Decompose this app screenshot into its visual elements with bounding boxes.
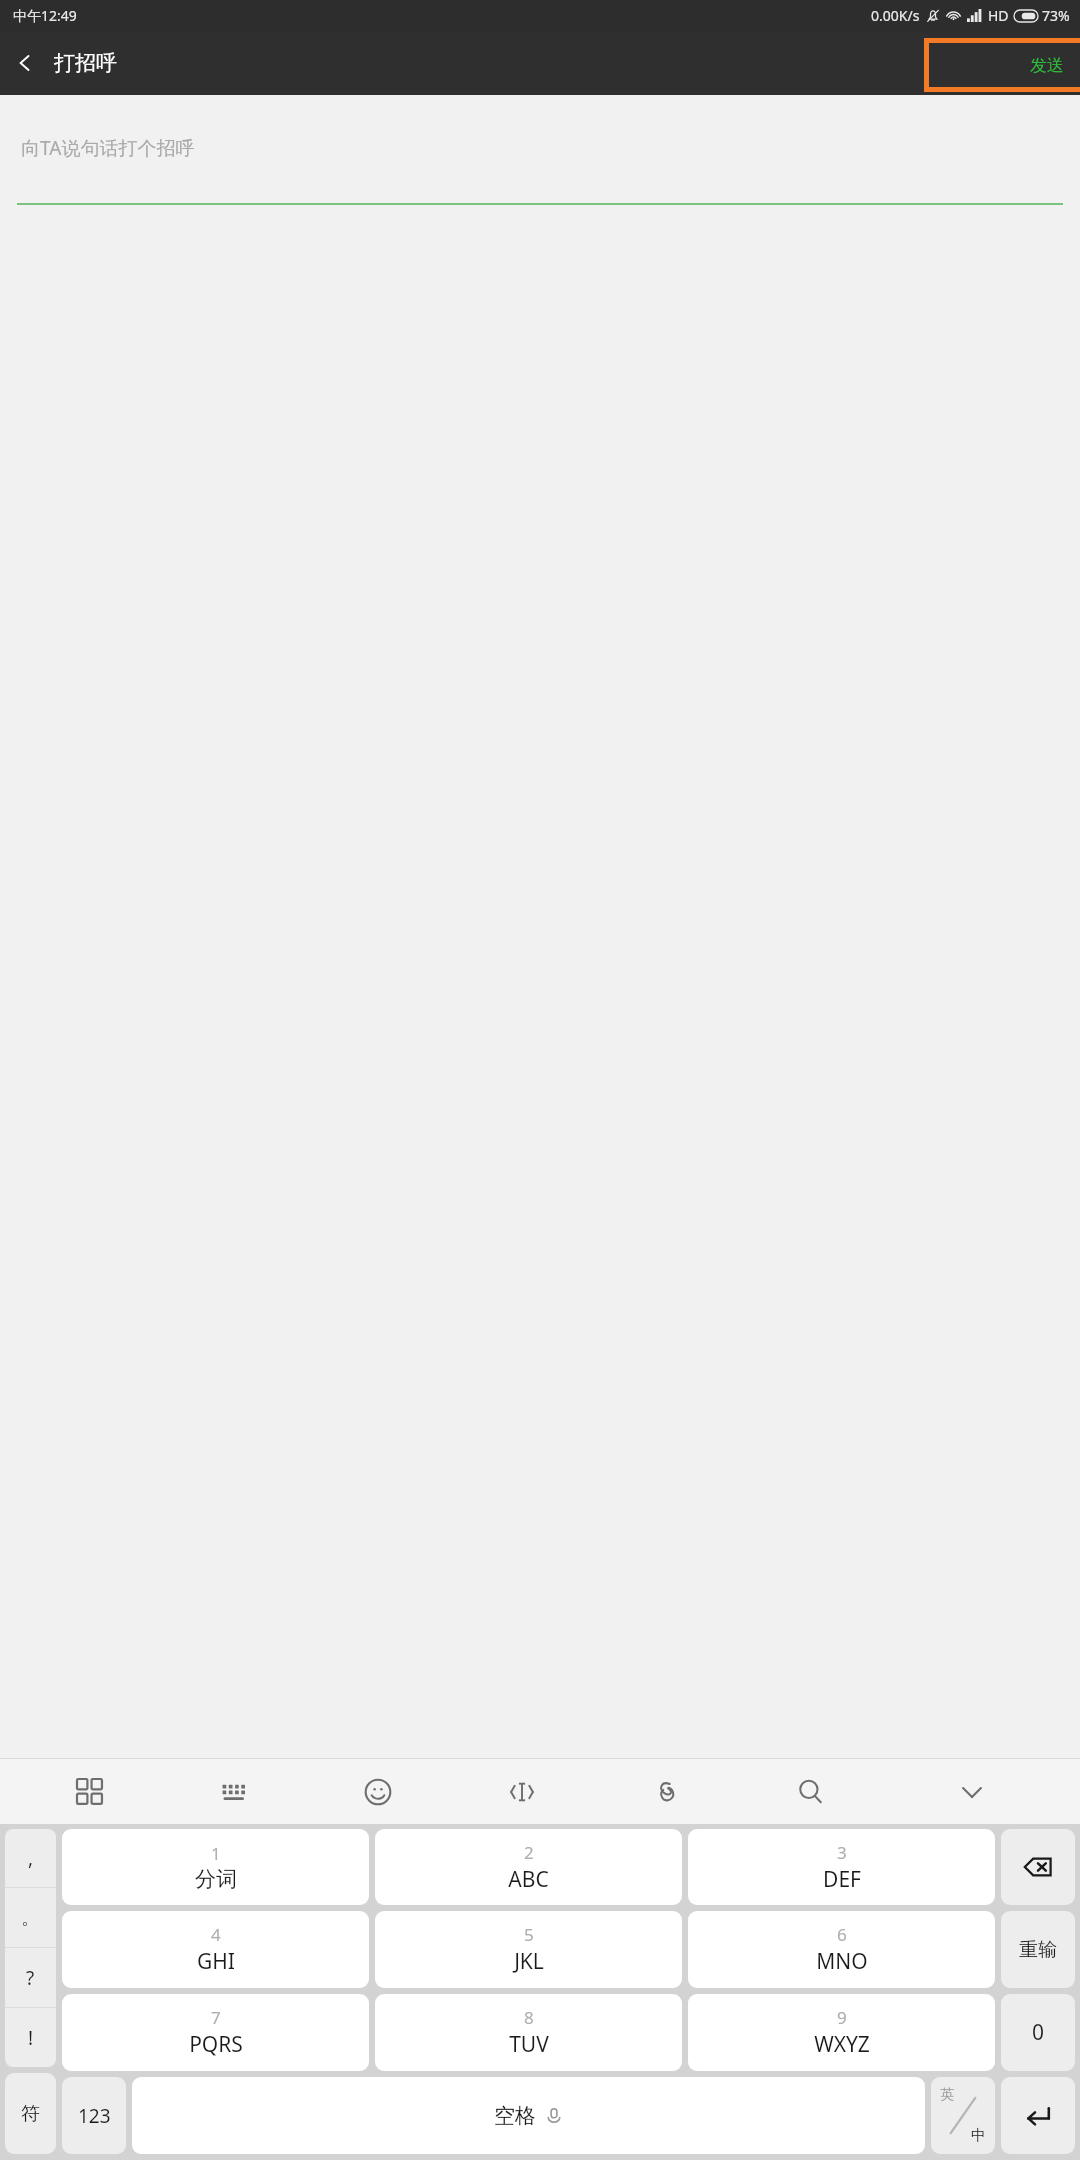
staticText: ? [26,1965,35,1991]
staticText: MNO [816,1947,868,1976]
staticText: 空格 [494,2103,536,2129]
staticText: 9 [837,2006,847,2029]
staticText: ! [28,2025,34,2051]
staticText: 123 [78,2103,111,2129]
button[interactable]: Keyboard layouts [18,1759,162,1824]
staticText: 重输 [1019,1938,1057,1962]
staticText: 0 [1032,2018,1045,2047]
staticText: 英 [940,2086,954,2104]
staticText: 7 [211,2006,221,2029]
button[interactable]: Hide keyboard [882,1759,1062,1824]
button[interactable]: 123 [62,2077,126,2154]
staticText: 向TA说句话打个招呼 [21,135,195,161]
staticText: ABC [508,1865,549,1894]
button[interactable]: Keyboard [162,1759,306,1824]
button[interactable]: 。 [5,1888,56,1947]
button[interactable]: , [5,1829,56,1887]
staticText: 2 [524,1841,534,1864]
staticText: PQRS [189,2030,243,2059]
staticText: HD [988,6,1009,25]
button[interactable]: 4 [62,1911,369,1988]
staticText: WXYZ [814,2030,870,2059]
staticText: 6 [837,1923,847,1946]
button[interactable]: 发送 [929,43,1080,87]
staticText: 0.00K/s [871,6,920,25]
staticText: 打招呼 [54,50,117,76]
button[interactable]: Search [738,1759,882,1824]
button[interactable]: 6 [688,1911,995,1988]
button[interactable]: 3 [688,1829,995,1905]
staticText: 中 [971,2126,986,2145]
button[interactable]: 空格 [132,2077,925,2154]
staticText: JKL [514,1947,544,1976]
staticText: 符 [21,2102,40,2126]
staticText: 发送 [1030,55,1064,76]
other: Back [14,52,36,74]
button[interactable]: 5 [375,1911,682,1988]
button[interactable]: Emoji [306,1759,450,1824]
staticText: TUV [509,2030,549,2059]
button[interactable]: 7 [62,1994,369,2071]
staticText: , [28,1845,34,1871]
button[interactable]: Edit text [450,1759,594,1824]
staticText: 中午12:49 [13,6,77,25]
staticText: 分词 [195,1866,237,1892]
button[interactable]: Enter [1001,2077,1075,2154]
button[interactable]: Backspace [1001,1829,1075,1905]
button[interactable]: ! [5,2008,56,2067]
button[interactable]: ? [5,1948,56,2007]
staticText: 3 [837,1841,847,1864]
button[interactable]: 9 [688,1994,995,2071]
staticText: 4 [211,1923,221,1946]
button[interactable]: 0 [1001,1994,1075,2071]
button[interactable]: 英 [931,2077,995,2154]
button[interactable]: 1 [62,1829,369,1905]
staticText: 1 [211,1842,221,1865]
button[interactable]: 8 [375,1994,682,2071]
button[interactable]: 符 [5,2073,56,2154]
staticText: 5 [524,1923,534,1946]
staticText: GHI [197,1947,235,1976]
staticText: 73% [1042,6,1070,25]
button[interactable]: 2 [375,1829,682,1905]
button[interactable]: 重输 [1001,1911,1075,1988]
button[interactable]: Clipboard [594,1759,738,1824]
staticText: DEF [823,1865,861,1894]
staticText: 8 [524,2006,534,2029]
button[interactable]: Back [0,42,131,84]
staticText: 。 [21,1906,40,1930]
